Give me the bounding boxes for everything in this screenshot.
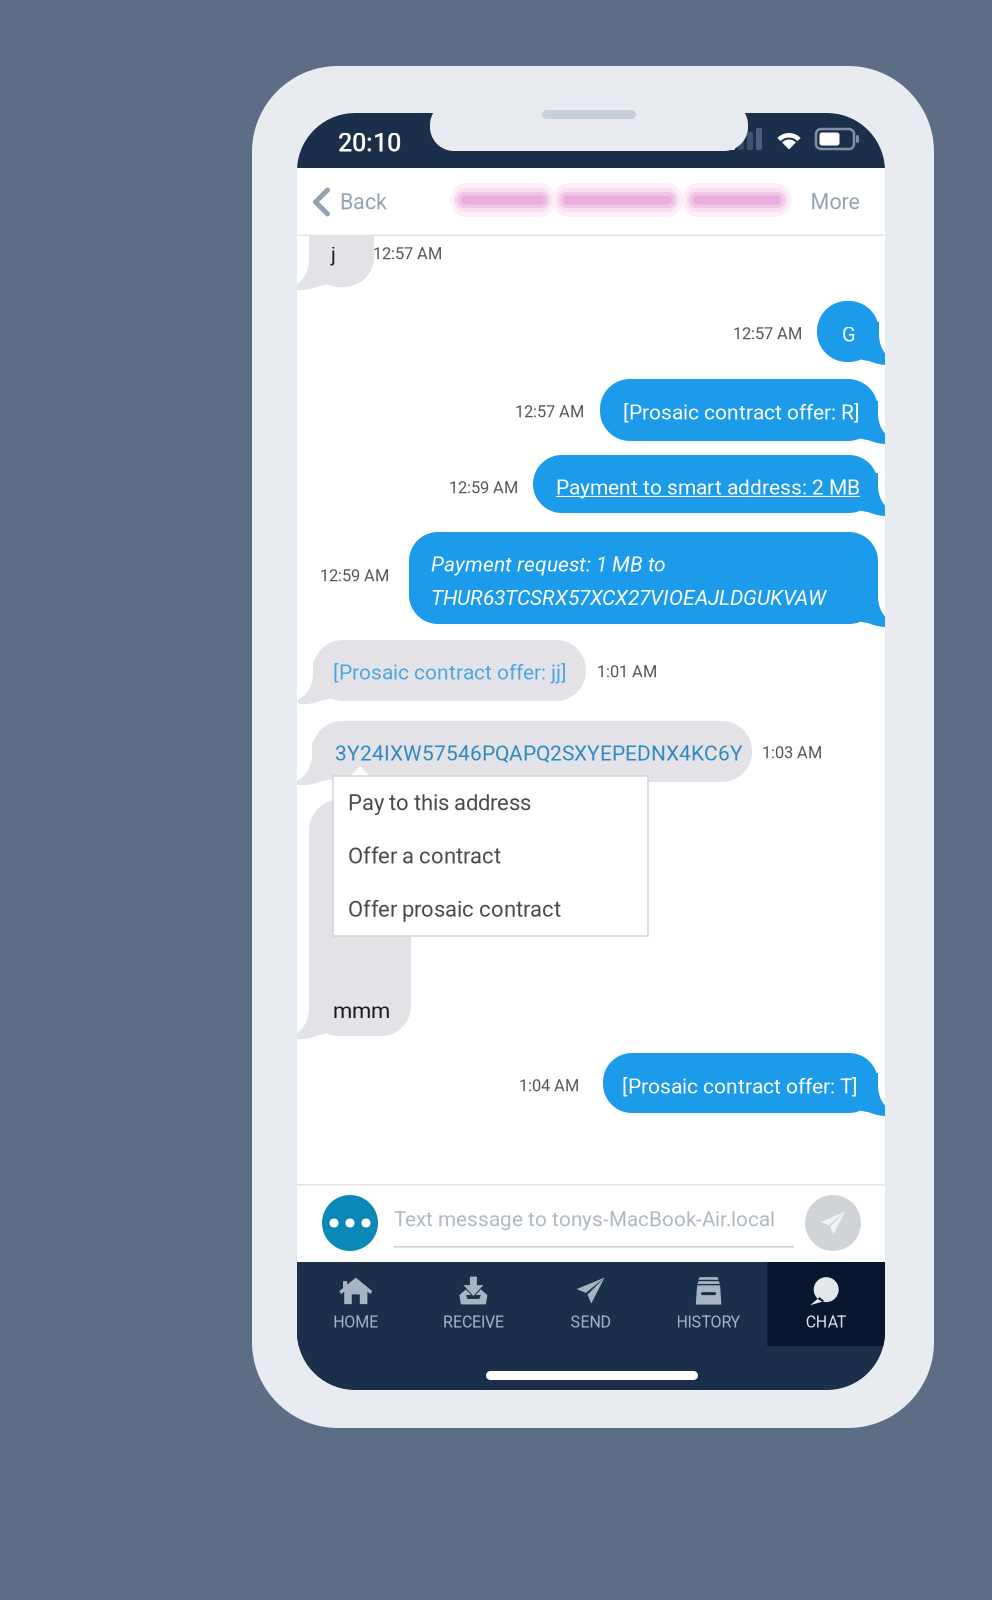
staticText: CHAT — [806, 1313, 847, 1331]
staticText: 12:59 AM — [320, 566, 389, 585]
staticText: 1:03 AM — [762, 743, 822, 762]
staticText: 20:10 — [338, 128, 401, 158]
button[interactable]: Back — [297, 168, 405, 236]
staticText: HISTORY — [677, 1313, 741, 1331]
staticText: Text message to tonys-MacBook-Air.local — [394, 1207, 775, 1231]
button[interactable]: HISTORY — [650, 1262, 767, 1346]
button[interactable]: Pay to this address — [333, 776, 648, 829]
button[interactable]: Offer prosaic contract — [333, 883, 648, 936]
staticText: SEND — [570, 1313, 611, 1331]
staticText: HOME — [333, 1313, 378, 1331]
staticText: 1:04 AM — [519, 1076, 579, 1095]
staticText: RECEIVE — [443, 1313, 504, 1331]
staticText: 12:57 AM — [515, 402, 584, 421]
staticText: [Prosaic contract offer: T] — [622, 1074, 858, 1098]
staticText: [Prosaic contract offer: R] — [623, 400, 860, 424]
staticText: 12:57 AM — [733, 324, 802, 343]
button[interactable]: Offer a contract — [333, 829, 648, 883]
staticText: Payment request: 1 MB to — [431, 552, 666, 576]
staticText: 12:57 AM — [373, 244, 442, 263]
staticText: Offer prosaic contract — [348, 896, 561, 922]
staticText: 1:01 AM — [597, 662, 657, 681]
staticText: 3Y24IXW57546PQAPQ2SXYEPEDNX4KC6Y — [335, 741, 743, 765]
staticText: Back — [340, 189, 387, 215]
button[interactable]: Send — [805, 1195, 861, 1251]
button[interactable]: HOME — [297, 1262, 415, 1346]
button[interactable]: RECEIVE — [415, 1262, 532, 1346]
staticText: More — [810, 189, 859, 215]
staticText: Pay to this address — [348, 790, 531, 816]
staticText: THUR63TCSRX57XCX27VIOEAJLDGUKVAW — [431, 585, 826, 610]
button[interactable]: SEND — [532, 1262, 650, 1346]
staticText: G — [842, 323, 856, 346]
button[interactable]: More — [797, 168, 873, 236]
button[interactable]: More options — [322, 1195, 378, 1251]
staticText: j — [331, 243, 336, 266]
staticText: mmm — [333, 998, 390, 1024]
staticText: Offer a contract — [348, 843, 501, 869]
staticText: 12:59 AM — [449, 478, 518, 497]
button[interactable]: CHAT — [767, 1262, 885, 1346]
staticText: [Prosaic contract offer: jj] — [333, 660, 567, 684]
staticText: Payment to smart address: 2 MB — [556, 475, 860, 499]
